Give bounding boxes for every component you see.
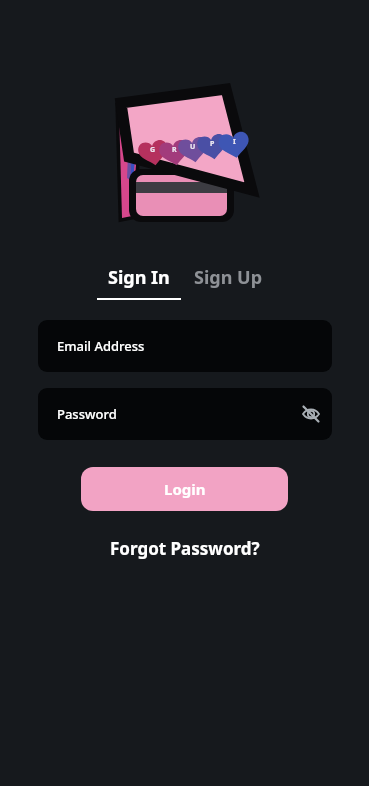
staticText: Login: [164, 479, 206, 499]
staticText: Sign Up: [194, 265, 263, 290]
button[interactable]: Sign Up: [193, 265, 263, 290]
button[interactable]: Forgot Password?: [110, 537, 260, 560]
staticText: Email Address: [57, 337, 145, 355]
staticText: R: [172, 145, 177, 155]
staticText: Sign In: [108, 265, 170, 290]
staticText: G: [150, 145, 156, 155]
button[interactable]: Sign In: [97, 265, 181, 300]
button[interactable]: Login: [81, 467, 288, 511]
staticText: Password: [57, 405, 117, 423]
staticText: P: [210, 139, 215, 149]
staticText: I: [233, 137, 236, 147]
button[interactable]: Email Address: [38, 320, 332, 372]
staticText: Forgot Password?: [110, 537, 260, 560]
staticText: U: [190, 142, 196, 152]
button[interactable]: Password: [38, 388, 332, 440]
